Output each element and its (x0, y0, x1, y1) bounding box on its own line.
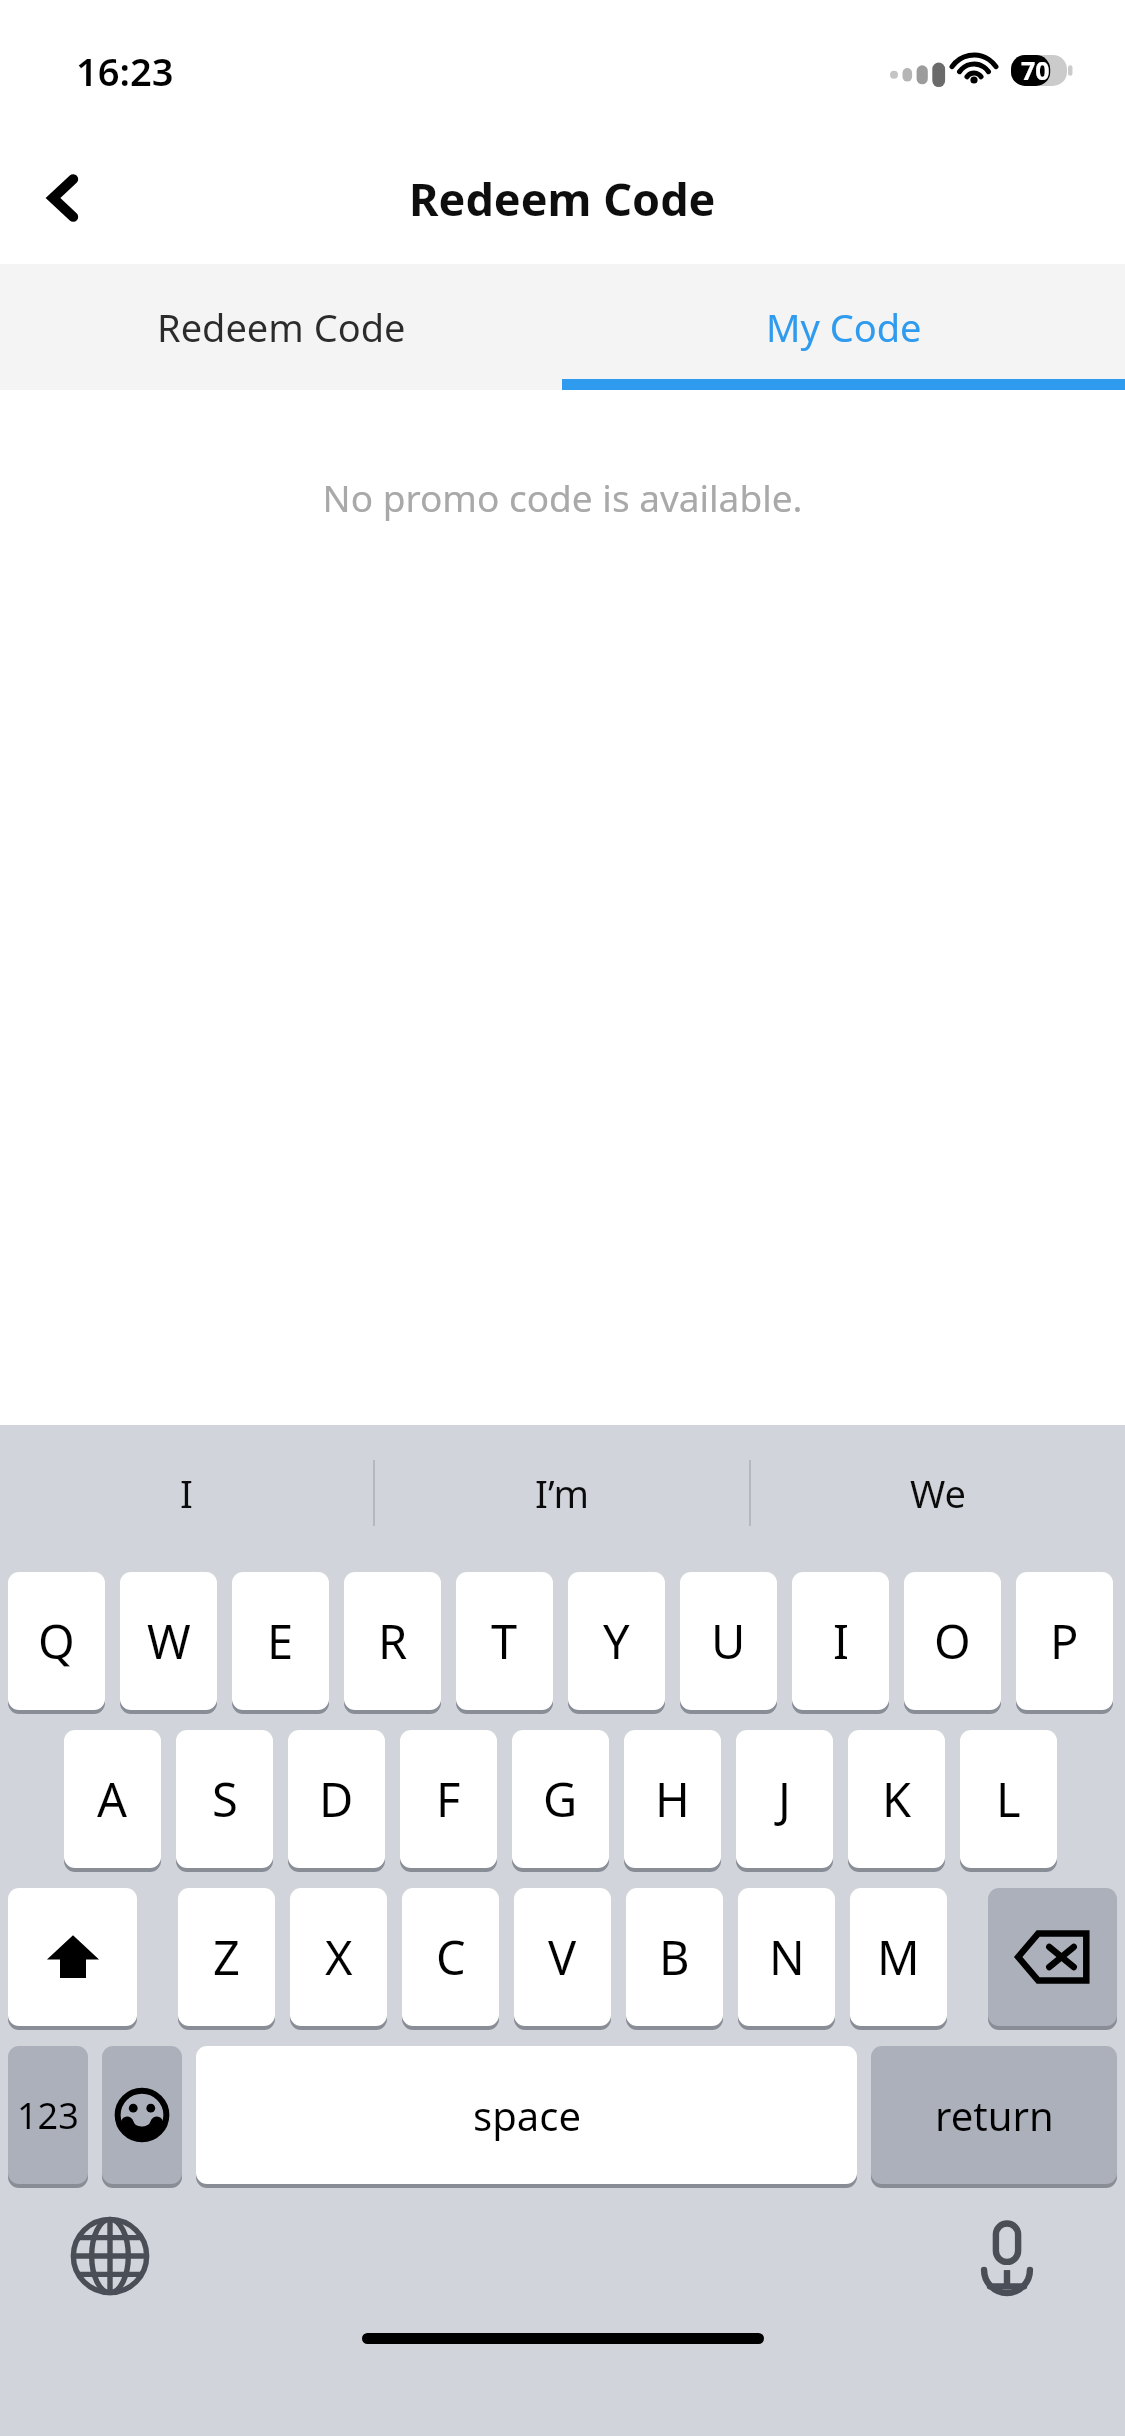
staticText: T (491, 1609, 518, 1673)
button[interactable]: C (402, 1885, 499, 2028)
staticText: W (147, 1609, 191, 1673)
staticText: Q (38, 1609, 75, 1673)
button[interactable]: M (850, 1885, 947, 2028)
button[interactable]: space (196, 2043, 857, 2186)
button[interactable]: G (512, 1727, 609, 1870)
staticText: Redeem Code (409, 168, 716, 229)
staticText: Z (213, 1925, 240, 1989)
button[interactable]: My Code (562, 264, 1125, 390)
button[interactable]: Z (178, 1885, 275, 2028)
staticText: We (910, 1467, 967, 1519)
button[interactable]: Q (8, 1569, 105, 1712)
button[interactable]: S (176, 1727, 273, 1870)
staticText: K (882, 1767, 912, 1831)
staticText: I’m (535, 1467, 589, 1519)
staticText: L (996, 1767, 1021, 1831)
staticText: Y (603, 1609, 630, 1673)
staticText: F (436, 1767, 461, 1831)
button[interactable]: We (751, 1425, 1125, 1561)
staticText: No promo code is available. (0, 472, 1125, 522)
button[interactable]: A (64, 1727, 161, 1870)
staticText: H (655, 1767, 690, 1831)
staticText: Redeem Code (157, 301, 406, 353)
button[interactable]: Dictation (951, 2200, 1063, 2312)
button[interactable]: Backspace (988, 1885, 1117, 2028)
staticText: R (378, 1609, 408, 1673)
staticText: P (1050, 1609, 1079, 1673)
button[interactable]: V (514, 1885, 611, 2028)
staticText: U (711, 1609, 746, 1673)
button[interactable]: Shift (8, 1885, 137, 2028)
button[interactable]: Next keyboard (54, 2200, 166, 2312)
button[interactable]: return (871, 2043, 1117, 2186)
staticText: M (877, 1925, 920, 1989)
button[interactable]: N (738, 1885, 835, 2028)
staticText: 70 (1021, 53, 1050, 87)
button[interactable]: H (624, 1727, 721, 1870)
staticText: My Code (766, 301, 922, 353)
button[interactable]: Emoji (102, 2043, 182, 2186)
button[interactable]: X (290, 1885, 387, 2028)
staticText: I (180, 1467, 193, 1519)
staticText: G (543, 1767, 578, 1831)
button[interactable]: R (344, 1569, 441, 1712)
staticText: J (778, 1767, 791, 1831)
button[interactable]: T (456, 1569, 553, 1712)
button[interactable]: K (848, 1727, 945, 1870)
staticText: I (833, 1609, 849, 1673)
button[interactable]: I’m (375, 1425, 749, 1561)
button[interactable]: D (288, 1727, 385, 1870)
staticText: A (97, 1767, 128, 1831)
button[interactable]: Back (18, 152, 110, 244)
staticText: 123 (17, 2091, 79, 2140)
staticText: C (436, 1925, 466, 1989)
button[interactable]: I (792, 1569, 889, 1712)
button[interactable]: U (680, 1569, 777, 1712)
button[interactable]: J (736, 1727, 833, 1870)
button[interactable]: I (0, 1425, 373, 1561)
button[interactable]: 123 (8, 2043, 88, 2186)
button[interactable]: O (904, 1569, 1001, 1712)
staticText: X (325, 1925, 353, 1989)
button[interactable]: B (626, 1885, 723, 2028)
staticText: V (548, 1925, 577, 1989)
button[interactable]: P (1016, 1569, 1113, 1712)
staticText: space (473, 2088, 581, 2142)
button[interactable]: E (232, 1569, 329, 1712)
staticText: 16:23 (76, 45, 174, 97)
staticText: B (659, 1925, 690, 1989)
button[interactable]: L (960, 1727, 1057, 1870)
button[interactable]: F (400, 1727, 497, 1870)
staticText: E (267, 1609, 294, 1673)
staticText: S (212, 1767, 238, 1831)
staticText: D (319, 1767, 354, 1831)
button[interactable]: Y (568, 1569, 665, 1712)
staticText: N (769, 1925, 805, 1989)
button[interactable]: Redeem Code (0, 264, 562, 390)
staticText: O (934, 1609, 971, 1673)
staticText: return (935, 2088, 1054, 2142)
button[interactable]: W (120, 1569, 217, 1712)
